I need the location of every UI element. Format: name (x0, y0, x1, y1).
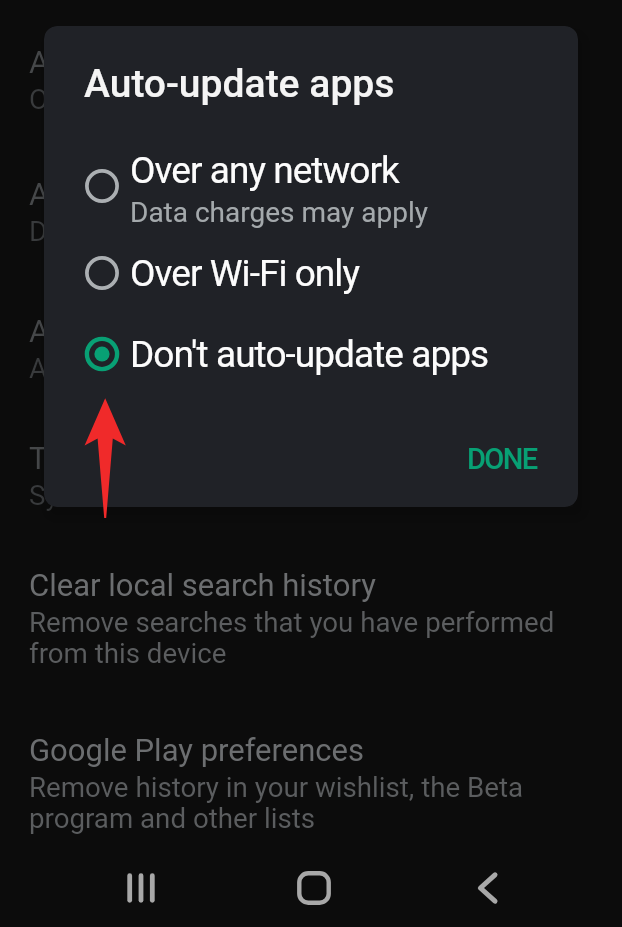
staticText: Auto-update apps (29, 44, 274, 80)
staticText: Remove searches that you have performed … (29, 606, 555, 670)
staticText: Remove history in your wishlist, the Bet… (29, 771, 524, 835)
staticText: Over Wi-Fi only (130, 252, 359, 295)
button[interactable]: Recent apps (105, 852, 177, 924)
staticText: Over any network (130, 149, 399, 192)
button[interactable]: Over Wi-Fi only (44, 245, 578, 301)
button[interactable]: Clear local search history (0, 567, 622, 670)
staticText: Don't auto-update apps (130, 333, 489, 376)
button[interactable]: Account (0, 313, 622, 384)
staticText: Auto-play videos (29, 176, 257, 212)
staticText: DONE (467, 442, 537, 476)
button[interactable]: Don't auto-update apps (44, 326, 578, 382)
button[interactable]: Auto-update apps (0, 44, 622, 115)
staticText: Account (29, 313, 144, 349)
button[interactable]: DONE (451, 431, 553, 487)
button[interactable]: Home (278, 852, 350, 924)
button[interactable]: Over any network (44, 144, 578, 234)
staticText: Auto-update apps (84, 61, 395, 107)
staticText: Over Wi-Fi only (29, 83, 211, 115)
staticText: Default (29, 215, 118, 247)
staticText: Data charges may apply (130, 196, 428, 229)
button[interactable]: Auto-play videos (0, 176, 622, 247)
button[interactable]: Back (452, 852, 524, 924)
staticText: App download preference (29, 352, 345, 384)
staticText: Clear local search history (29, 567, 376, 603)
staticText: Theme (29, 440, 125, 476)
staticText: System default (29, 479, 214, 511)
staticText: Google Play preferences (29, 732, 364, 768)
button[interactable]: Theme (0, 440, 622, 511)
button[interactable]: Google Play preferences (0, 732, 622, 835)
